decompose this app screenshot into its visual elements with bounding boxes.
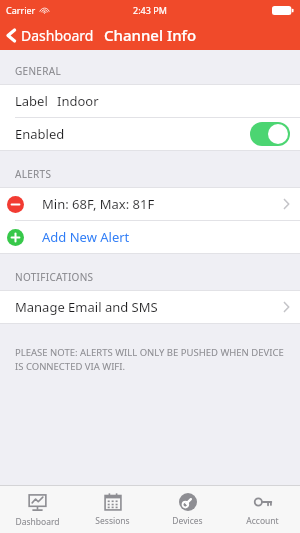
button[interactable]: Dashboard bbox=[0, 22, 102, 49]
staticText: Manage Email and SMS bbox=[15, 298, 158, 316]
button[interactable]: Sessions bbox=[75, 486, 150, 533]
other: Devices bbox=[179, 493, 197, 511]
staticText: PLEASE NOTE: ALERTS WILL ONLY BE PUSHED … bbox=[15, 346, 285, 373]
staticText: Add New Alert bbox=[42, 228, 130, 246]
button[interactable]: Manage Email and SMS bbox=[0, 291, 300, 323]
button[interactable]: Label bbox=[0, 85, 300, 117]
button[interactable]: Add alert bbox=[0, 221, 300, 253]
staticText: Dashboard bbox=[21, 26, 94, 45]
staticText: Devices bbox=[172, 515, 203, 527]
staticText: GENERAL bbox=[15, 64, 61, 78]
button[interactable]: Delete alert bbox=[0, 188, 300, 220]
staticText: Carrier bbox=[6, 4, 36, 16]
other: Dashboard bbox=[28, 493, 47, 512]
other: Add alert bbox=[7, 229, 24, 246]
button[interactable]: Account bbox=[225, 486, 300, 533]
button[interactable]: Enabled bbox=[0, 118, 300, 150]
staticText: ALERTS bbox=[15, 167, 52, 181]
other: Delete alert bbox=[7, 196, 24, 213]
staticText: Account bbox=[246, 515, 279, 527]
staticText: Enabled bbox=[15, 125, 65, 143]
staticText: Label bbox=[15, 92, 48, 110]
staticText: Channel Info bbox=[104, 25, 197, 45]
staticText: Sessions bbox=[95, 515, 130, 527]
other: Account bbox=[254, 493, 272, 511]
staticText: NOTIFICATIONS bbox=[15, 270, 94, 284]
staticText: Indoor bbox=[57, 92, 99, 110]
button[interactable]: Devices bbox=[150, 486, 225, 533]
staticText: 2:43 PM bbox=[133, 4, 167, 16]
button[interactable]: Dashboard bbox=[0, 486, 75, 533]
other: Sessions bbox=[104, 493, 122, 511]
staticText: Min: 68F, Max: 81F bbox=[42, 195, 155, 213]
staticText: Dashboard bbox=[15, 516, 60, 528]
